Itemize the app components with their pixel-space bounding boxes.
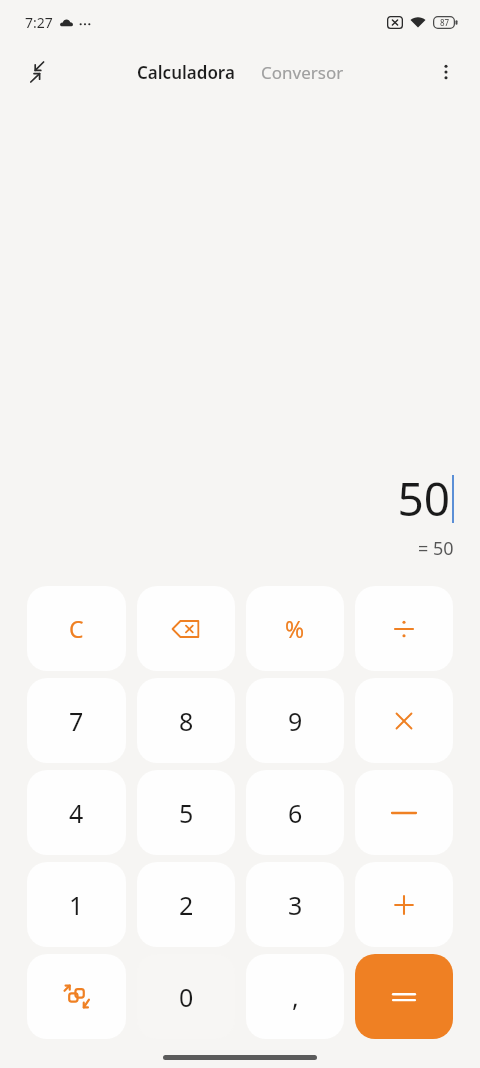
button[interactable]: 9 [246, 678, 344, 763]
button[interactable]: Add [355, 862, 453, 947]
staticText: 0 [179, 980, 194, 1014]
button[interactable]: Backspace [137, 586, 235, 671]
button[interactable]: Calculadora [131, 55, 241, 90]
staticText: 9 [288, 704, 303, 738]
staticText: 7 [69, 704, 84, 738]
staticText: 8 [179, 704, 194, 738]
button[interactable]: More options [426, 52, 466, 92]
button[interactable]: 5 [137, 770, 235, 855]
staticText: 4 [69, 796, 84, 830]
staticText: 2 [179, 888, 194, 922]
button[interactable]: Subtract [355, 770, 453, 855]
staticText: 5 [179, 796, 194, 830]
staticText: 7:27 [25, 13, 53, 32]
button[interactable]: , [246, 954, 344, 1039]
staticText: , [292, 980, 299, 1014]
button[interactable]: Collapse [18, 52, 58, 92]
button[interactable]: 6 [246, 770, 344, 855]
staticText: Calculadora [137, 61, 235, 84]
staticText: C [69, 613, 84, 644]
button[interactable]: 4 [27, 770, 126, 855]
button[interactable]: 8 [137, 678, 235, 763]
button[interactable]: Equals [355, 954, 453, 1039]
button[interactable]: % [246, 586, 344, 671]
button[interactable]: C [27, 586, 126, 671]
staticText: 50 [397, 467, 450, 530]
staticText: 6 [288, 796, 303, 830]
staticText: 87 [440, 17, 450, 28]
staticText: % [285, 613, 305, 644]
button[interactable]: Conversor [255, 55, 350, 90]
staticText: 1 [69, 888, 84, 922]
button[interactable]: Unit converter [27, 954, 126, 1039]
button[interactable]: 2 [137, 862, 235, 947]
staticText: Conversor [261, 61, 344, 84]
staticText: 3 [288, 888, 303, 922]
button[interactable]: 3 [246, 862, 344, 947]
button[interactable]: Divide [355, 586, 453, 671]
button[interactable]: 7 [27, 678, 126, 763]
button[interactable]: 1 [27, 862, 126, 947]
button[interactable]: Multiply [355, 678, 453, 763]
button[interactable]: 0 [137, 954, 235, 1039]
staticText: = 50 [418, 536, 454, 561]
